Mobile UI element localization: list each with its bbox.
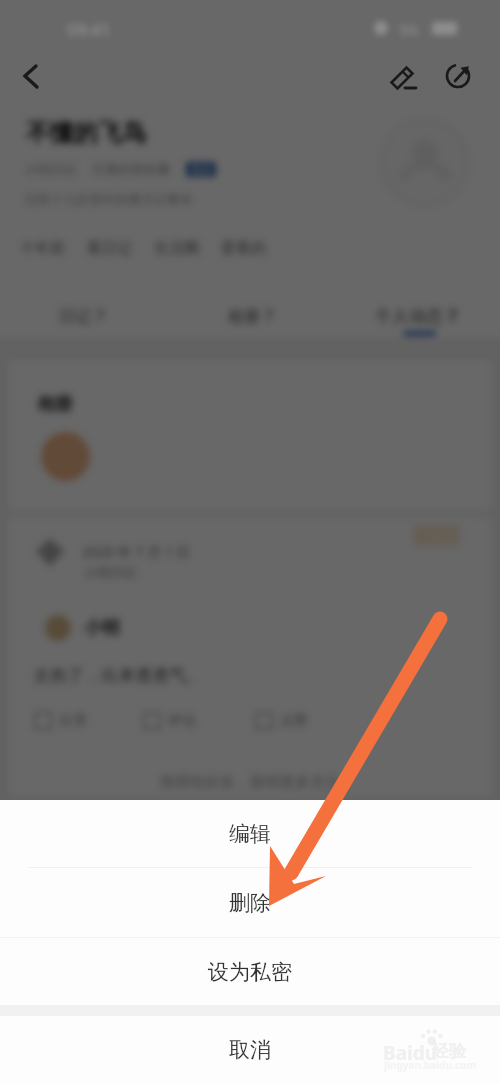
button[interactable]: 编辑 [0, 800, 500, 868]
staticText: 十年前 [20, 239, 65, 258]
staticText: 编辑 [229, 821, 271, 847]
staticText: 个人动态 7 [375, 304, 458, 327]
staticText: 经验 [432, 1041, 466, 1062]
staticText: 看日记 [87, 239, 132, 258]
staticText: 生活圈 [154, 239, 199, 258]
staticText: 评论 [168, 712, 196, 730]
staticText: 可看的朋友圈 [92, 161, 170, 177]
staticText: 09:41 [67, 18, 111, 41]
staticText: 设为私密 [208, 959, 292, 985]
button[interactable]: 设为私密 [0, 938, 500, 1005]
staticText: 小明 [84, 617, 120, 640]
staticText: 2020 年 7 月 1 日 [82, 542, 191, 561]
staticText: 关注 [190, 163, 212, 177]
button[interactable]: Back [12, 58, 50, 96]
staticText: 太热了，出来透透气。 [33, 665, 203, 686]
staticText: 相册 [37, 393, 73, 416]
staticText: 点赞 [280, 712, 308, 730]
staticText: 分享 [59, 712, 87, 730]
staticText: 不懂的飞鸟 [26, 118, 146, 148]
staticText: 推荐给好友，获得更多关注 [160, 773, 340, 792]
staticText: 日记 7 [59, 305, 105, 327]
staticText: 相册 7 [228, 305, 274, 327]
button[interactable]: 删除 [0, 868, 500, 938]
staticText: 小明日记 [84, 564, 136, 580]
button[interactable]: 取消 [0, 1016, 500, 1084]
staticText: Baidu [383, 1040, 438, 1066]
staticText: 5G [399, 19, 419, 39]
staticText: jingyan.baidu.com [384, 1058, 476, 1072]
button[interactable]: Share [440, 58, 478, 96]
button[interactable]: Edit [384, 58, 422, 96]
staticText: 爱看的 [221, 239, 266, 258]
staticText: 取消 [229, 1037, 271, 1063]
staticText: 删除 [229, 890, 271, 916]
